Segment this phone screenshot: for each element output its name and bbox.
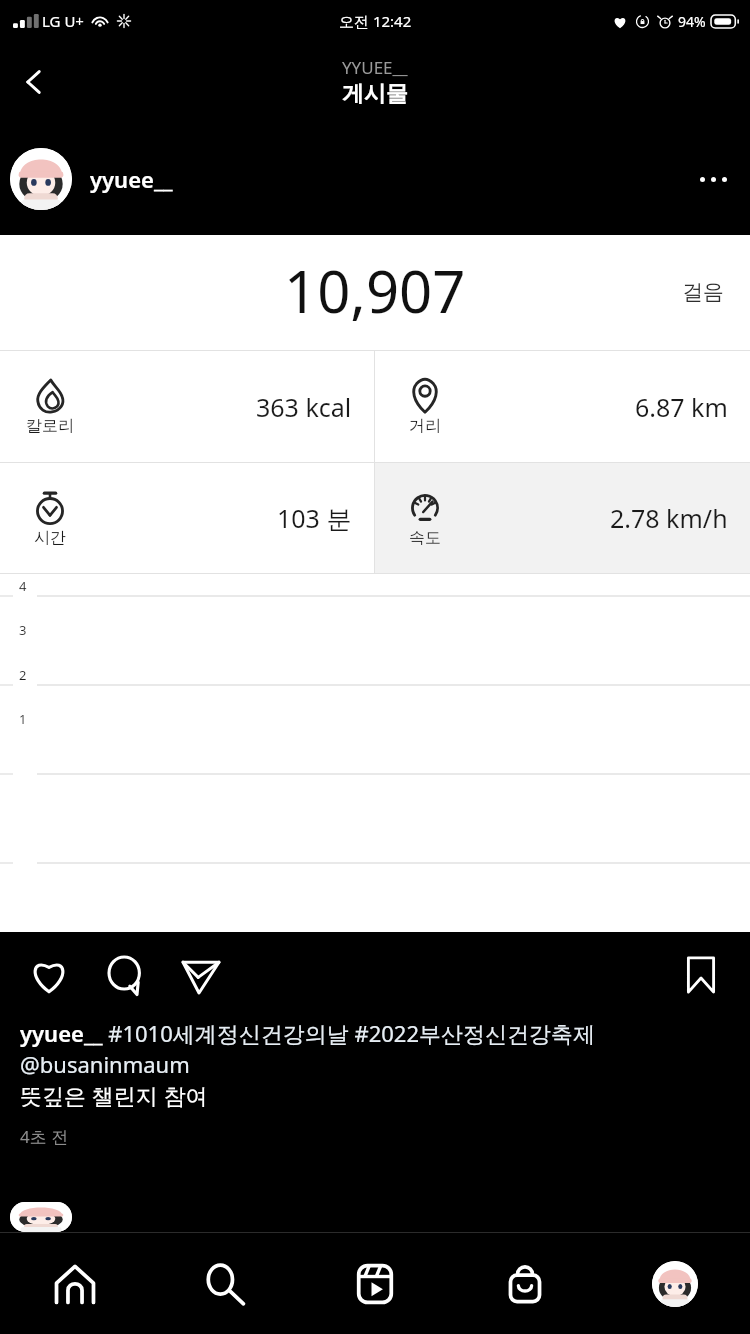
staticText: yyuee__ xyxy=(90,164,173,194)
button[interactable]: Save xyxy=(674,948,728,1002)
button[interactable]: 칼로리 xyxy=(0,351,374,462)
button[interactable] xyxy=(10,148,72,210)
staticText: yyuee__ #1010세계정신건강의날 #2022부산정신건강축제 @bus… xyxy=(20,1018,730,1111)
button[interactable]: Reels xyxy=(300,1233,450,1334)
staticText: 걸음 xyxy=(682,279,724,305)
staticText: 게시물 xyxy=(342,80,408,108)
staticText: 6.87 km xyxy=(635,390,728,424)
staticText: 4초 전 xyxy=(20,1125,69,1148)
staticText: 94% xyxy=(678,12,706,31)
staticText: 속도 xyxy=(409,528,441,548)
staticText: 거리 xyxy=(409,416,441,436)
button[interactable]: 거리 xyxy=(375,351,750,462)
staticText: 103 분 xyxy=(277,501,352,535)
staticText: 오전 12:42 xyxy=(339,11,412,31)
button[interactable]: 속도 xyxy=(375,463,750,573)
button[interactable]: Share xyxy=(172,946,230,1004)
button[interactable]: More options xyxy=(686,152,740,206)
staticText: LG U+ xyxy=(42,11,84,31)
staticText: 2 xyxy=(19,666,27,684)
button[interactable]: yyuee__ #1010세계정신건강의날 #2022부산정신건강축제 @bus… xyxy=(20,1018,730,1148)
button[interactable]: Comment xyxy=(96,946,154,1004)
button[interactable]: Shop xyxy=(450,1233,600,1334)
button[interactable]: Back xyxy=(6,54,62,110)
staticText: 시간 xyxy=(34,528,66,548)
button[interactable]: Search xyxy=(150,1233,300,1334)
button[interactable]: Home xyxy=(0,1233,150,1334)
staticText: 363 kcal xyxy=(256,390,352,424)
staticText: 1 xyxy=(19,710,27,728)
staticText: 3 xyxy=(19,621,27,639)
button[interactable]: 시간 xyxy=(0,463,374,573)
staticText: 2.78 km/h xyxy=(610,501,728,535)
button[interactable]: yyuee__ xyxy=(90,164,686,194)
staticText: 칼로리 xyxy=(26,416,74,436)
button[interactable]: Profile xyxy=(600,1233,750,1334)
staticText: YYUEE__ xyxy=(342,56,408,79)
button[interactable]: Like xyxy=(20,946,78,1004)
staticText: 10,907 xyxy=(284,251,466,330)
staticText: 4 xyxy=(19,577,27,595)
